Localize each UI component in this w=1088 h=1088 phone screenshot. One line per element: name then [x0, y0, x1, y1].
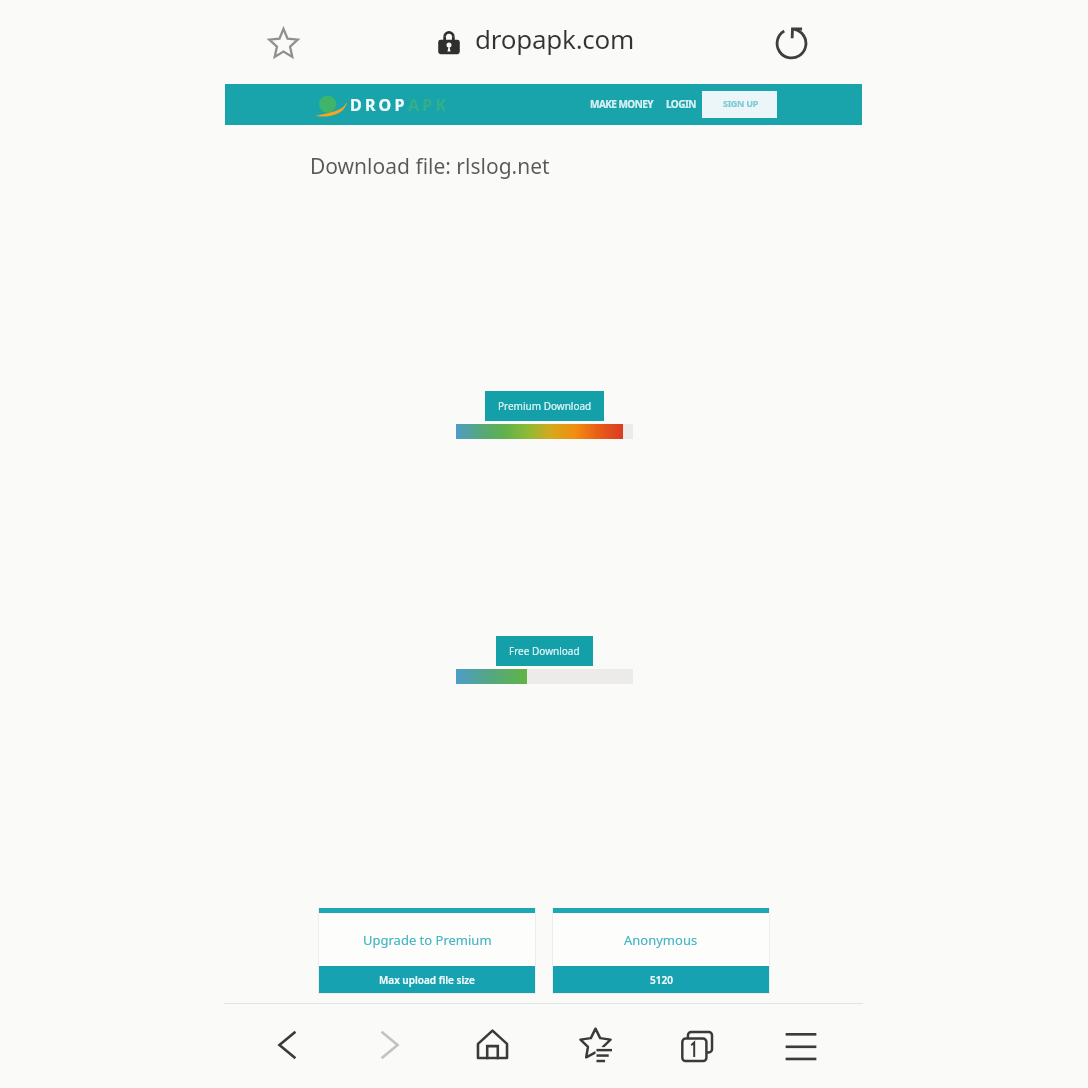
button[interactable]: LOGIN — [660, 89, 702, 118]
staticText: Upgrade to Premium — [363, 931, 492, 949]
button[interactable]: Back — [258, 1013, 322, 1077]
staticText: SIGN UP — [723, 97, 758, 109]
button[interactable]: SIGN UP — [702, 91, 777, 118]
staticText: Premium Download — [498, 399, 592, 413]
staticText: DROP — [350, 94, 408, 116]
button[interactable]: Bookmarks — [563, 1013, 627, 1077]
staticText: Anonymous — [624, 931, 698, 949]
button[interactable]: Bookmark — [251, 11, 315, 75]
button[interactable]: Anonymous — [553, 908, 769, 993]
button[interactable]: Upgrade to Premium — [319, 908, 535, 993]
button[interactable]: MAKE MONEY — [584, 89, 660, 118]
staticText: APK — [408, 94, 450, 116]
button[interactable]: Reload — [759, 11, 823, 75]
staticText: LOGIN — [666, 97, 696, 111]
button[interactable]: Premium Download — [485, 391, 604, 421]
button[interactable]: Home — [460, 1013, 524, 1077]
button[interactable]: Menu — [769, 1010, 833, 1074]
staticText: Free Download — [509, 644, 580, 658]
button[interactable]: Tabs — [665, 1014, 729, 1078]
staticText: Download file: rlslog.net — [310, 152, 550, 181]
button[interactable]: Forward — [355, 1013, 419, 1077]
staticText: dropapk.com — [475, 21, 635, 56]
staticText: Max upload file size — [379, 973, 475, 987]
staticText: MAKE MONEY — [590, 97, 654, 111]
button[interactable]: Free Download — [496, 636, 593, 666]
staticText: 5120 — [650, 973, 673, 987]
